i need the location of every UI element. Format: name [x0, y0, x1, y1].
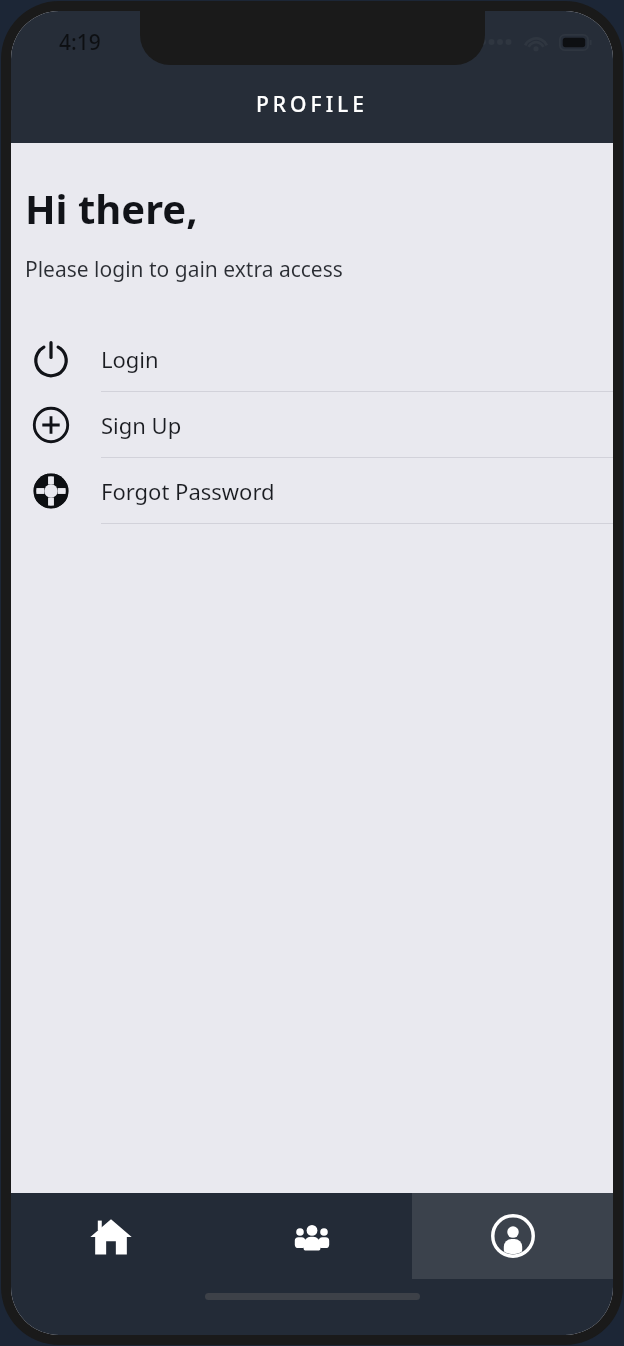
- button[interactable]: People: [211, 1193, 412, 1279]
- staticText: Hi there,: [25, 181, 198, 235]
- staticText: Sign Up: [101, 410, 182, 440]
- staticText: Please login to gain extra access: [25, 255, 343, 284]
- staticText: Forgot Password: [101, 476, 275, 506]
- button[interactable]: Sign Up: [11, 392, 613, 457]
- staticText: PROFILE: [256, 90, 368, 119]
- button[interactable]: Forgot Password: [11, 458, 613, 523]
- staticText: Login: [101, 344, 159, 374]
- staticText: 4:19: [59, 28, 101, 57]
- button[interactable]: Login: [11, 326, 613, 391]
- button[interactable]: Home: [11, 1193, 211, 1279]
- button[interactable]: Profile: [412, 1193, 613, 1279]
